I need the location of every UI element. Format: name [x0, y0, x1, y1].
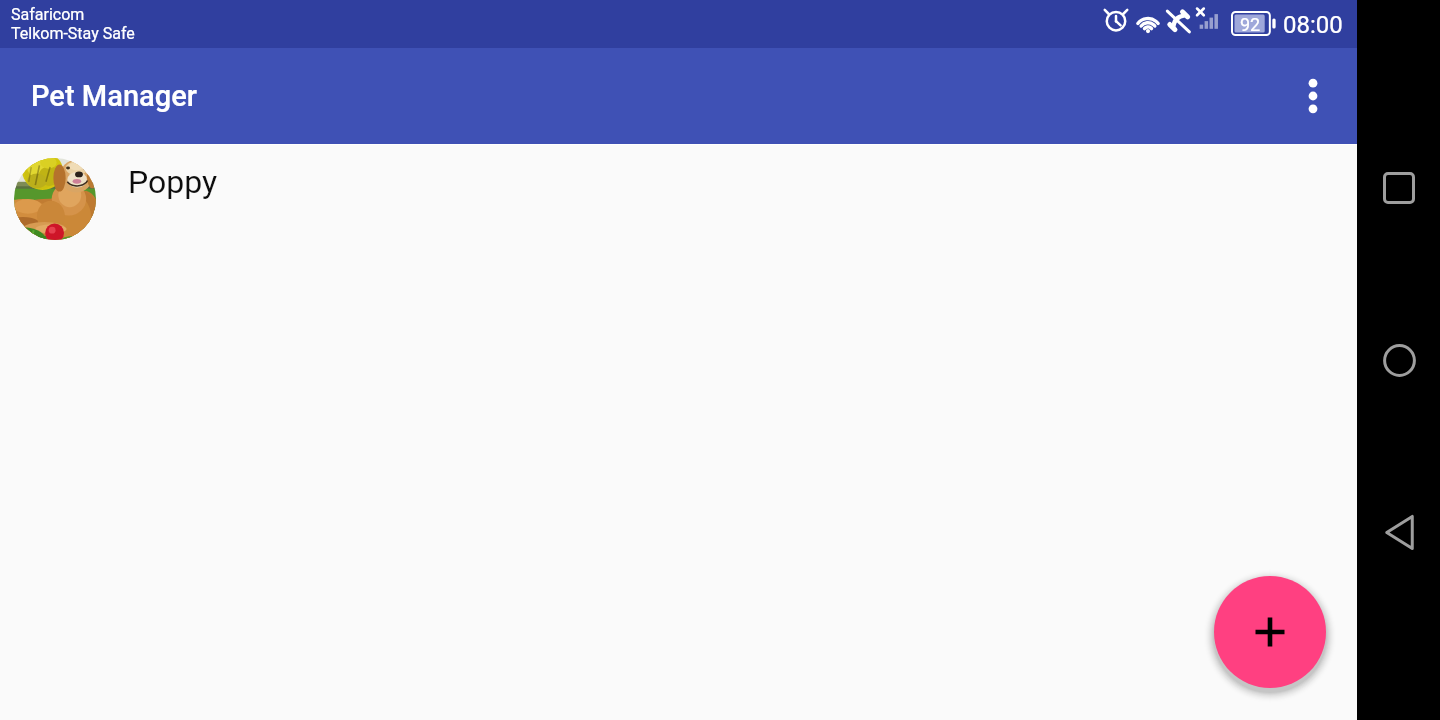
button[interactable]: Back	[1373, 506, 1425, 558]
button[interactable]: Recents	[1373, 162, 1425, 214]
button[interactable]: Home	[1373, 334, 1425, 386]
button[interactable]: More options	[1285, 68, 1341, 124]
staticText: 08:00	[1283, 11, 1343, 39]
staticText: Safaricom	[11, 5, 85, 24]
button[interactable]: Poppy	[0, 145, 1357, 257]
button[interactable]: Add pet	[1214, 576, 1326, 688]
staticText: Telkom-Stay Safe	[11, 24, 135, 43]
staticText: Pet Manager	[31, 79, 197, 113]
staticText: 92	[1240, 14, 1261, 35]
staticText: Poppy	[128, 163, 218, 201]
